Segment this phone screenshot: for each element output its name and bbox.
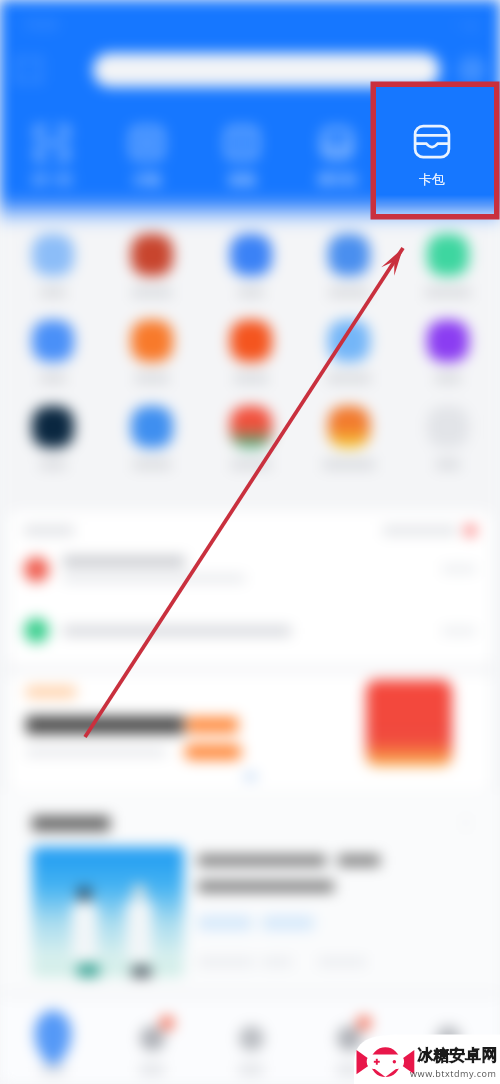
staticText: 扫一扫 bbox=[33, 171, 72, 187]
button[interactable] bbox=[105, 383, 198, 469]
button[interactable]: Profile bbox=[458, 56, 486, 84]
button[interactable] bbox=[6, 228, 99, 297]
button[interactable]: 乘车码 bbox=[292, 122, 382, 189]
button[interactable] bbox=[6, 297, 99, 383]
button[interactable]: Tab bbox=[105, 998, 198, 1074]
button[interactable] bbox=[204, 228, 297, 297]
button[interactable]: 付钱 bbox=[102, 122, 192, 189]
button[interactable] bbox=[302, 383, 395, 469]
button[interactable] bbox=[401, 383, 494, 469]
button[interactable]: 付钱 bbox=[102, 122, 192, 189]
staticText: 收钱 bbox=[229, 171, 255, 187]
staticText: 收钱 bbox=[229, 171, 255, 187]
button[interactable] bbox=[401, 383, 494, 469]
button[interactable] bbox=[401, 228, 494, 297]
button[interactable]: Tab bbox=[6, 998, 99, 1074]
button[interactable] bbox=[302, 297, 395, 383]
button[interactable]: 扫一扫 bbox=[7, 122, 97, 189]
button[interactable] bbox=[6, 383, 99, 469]
staticText: 乘车码 bbox=[318, 171, 357, 187]
button[interactable] bbox=[401, 297, 494, 383]
staticText: 冰糖安卓网 bbox=[417, 1046, 497, 1066]
button[interactable]: Tab bbox=[401, 998, 494, 1074]
button[interactable]: 收钱 bbox=[197, 122, 287, 189]
button[interactable] bbox=[8, 674, 492, 789]
button[interactable]: 卡包 bbox=[387, 122, 477, 189]
button[interactable] bbox=[401, 297, 494, 383]
button[interactable]: 扫一扫 bbox=[7, 122, 97, 189]
button[interactable] bbox=[8, 847, 492, 977]
staticText: 卡包 bbox=[419, 171, 445, 187]
button[interactable] bbox=[6, 297, 99, 383]
staticText: 扫一扫 bbox=[33, 171, 72, 187]
button[interactable] bbox=[6, 383, 99, 469]
staticText: 付钱 bbox=[134, 171, 160, 187]
button[interactable]: 乘车码 bbox=[292, 122, 382, 189]
button[interactable] bbox=[302, 297, 395, 383]
button[interactable] bbox=[105, 383, 198, 469]
button[interactable] bbox=[105, 228, 198, 297]
button[interactable]: Tab bbox=[105, 998, 198, 1074]
button[interactable] bbox=[204, 297, 297, 383]
staticText: www.btxtdmy.com bbox=[410, 1067, 497, 1079]
button[interactable]: Tab bbox=[302, 998, 395, 1074]
button[interactable] bbox=[302, 228, 395, 297]
button[interactable] bbox=[6, 228, 99, 297]
button[interactable] bbox=[204, 383, 297, 469]
staticText: 付钱 bbox=[134, 171, 160, 187]
button[interactable]: Tab bbox=[401, 998, 494, 1074]
button[interactable] bbox=[8, 847, 492, 977]
button[interactable] bbox=[93, 53, 440, 87]
button[interactable]: Profile bbox=[458, 56, 486, 84]
button[interactable]: 收钱 bbox=[197, 122, 287, 189]
button[interactable] bbox=[93, 53, 440, 87]
button[interactable] bbox=[302, 228, 395, 297]
button[interactable] bbox=[401, 228, 494, 297]
button[interactable] bbox=[204, 383, 297, 469]
staticText: 乘车码 bbox=[318, 171, 357, 187]
button[interactable] bbox=[8, 674, 492, 789]
button[interactable]: Tab bbox=[204, 998, 297, 1074]
button[interactable]: 卡包 bbox=[387, 122, 477, 189]
button[interactable]: Tab bbox=[204, 998, 297, 1074]
button[interactable] bbox=[204, 228, 297, 297]
button[interactable]: Tab bbox=[6, 998, 99, 1074]
button[interactable]: Tab bbox=[302, 998, 395, 1074]
staticText: 卡包 bbox=[419, 171, 445, 187]
button[interactable] bbox=[302, 383, 395, 469]
button[interactable] bbox=[105, 297, 198, 383]
button[interactable] bbox=[105, 228, 198, 297]
button[interactable] bbox=[105, 297, 198, 383]
button[interactable] bbox=[204, 297, 297, 383]
